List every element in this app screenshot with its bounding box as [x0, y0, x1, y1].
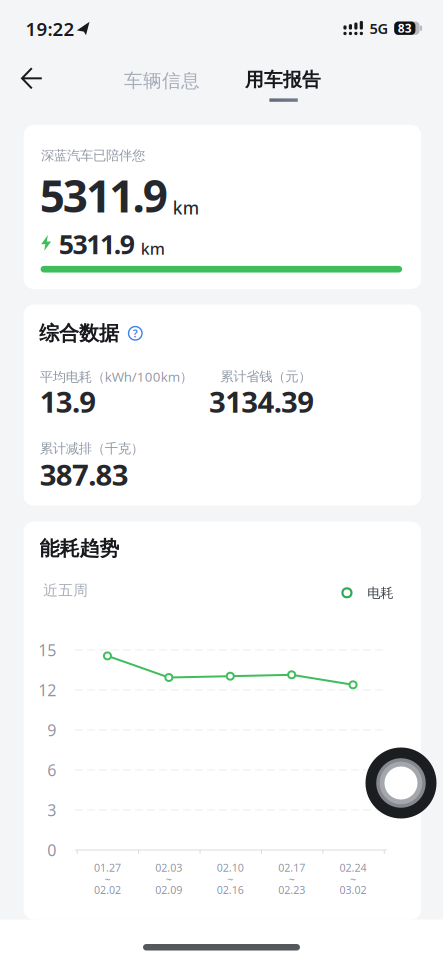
staticText: 能耗趋势: [39, 536, 119, 561]
staticText: ~: [104, 872, 110, 886]
button[interactable]: 综合数据说明: [129, 326, 142, 340]
staticText: 19:22: [25, 16, 74, 41]
staticText: 01.27: [94, 860, 121, 875]
staticText: 03.02: [339, 883, 366, 897]
button[interactable]: 车辆信息: [124, 69, 200, 92]
staticText: 02.02: [94, 883, 121, 897]
staticText: 累计省钱（元）: [220, 368, 311, 385]
staticText: 02.23: [278, 883, 305, 897]
staticText: 累计减排（千克）: [40, 440, 144, 457]
staticText: 用车报告: [245, 68, 321, 91]
staticText: 13.9: [40, 382, 96, 421]
button[interactable]: 用车报告: [245, 68, 321, 91]
staticText: 车辆信息: [124, 69, 200, 92]
button[interactable]: 返回: [0, 56, 44, 100]
staticText: 02.16: [217, 883, 244, 897]
staticText: 12: [38, 679, 56, 701]
staticText: 9: [47, 719, 56, 741]
staticText: 电耗: [367, 585, 393, 601]
staticText: 15: [38, 639, 56, 661]
staticText: ~: [227, 872, 233, 886]
staticText: 02.24: [339, 860, 366, 875]
staticText: 3: [47, 799, 56, 821]
staticText: ~: [289, 872, 295, 886]
staticText: 83: [398, 20, 412, 36]
staticText: 近五周: [43, 581, 88, 599]
staticText: 5311.9: [59, 226, 135, 262]
button[interactable]: 悬浮窗: [365, 747, 436, 818]
staticText: km: [141, 238, 165, 259]
staticText: 387.83: [40, 455, 129, 494]
staticText: ~: [166, 872, 172, 886]
staticText: 综合数据: [39, 321, 119, 346]
staticText: 5G: [369, 18, 388, 38]
staticText: 0: [47, 839, 56, 861]
staticText: 平均电耗（kWh/100km）: [40, 368, 193, 385]
staticText: 02.03: [155, 860, 182, 875]
staticText: 02.09: [155, 883, 182, 897]
staticText: 深蓝汽车已陪伴您: [41, 147, 145, 164]
staticText: km: [173, 196, 199, 219]
staticText: 02.10: [217, 860, 244, 875]
staticText: 5311.9: [40, 166, 168, 225]
staticText: ~: [350, 872, 356, 886]
staticText: 3134.39: [209, 382, 314, 421]
staticText: 02.17: [278, 860, 305, 875]
staticText: 6: [47, 759, 56, 781]
staticText: ?: [133, 326, 138, 340]
